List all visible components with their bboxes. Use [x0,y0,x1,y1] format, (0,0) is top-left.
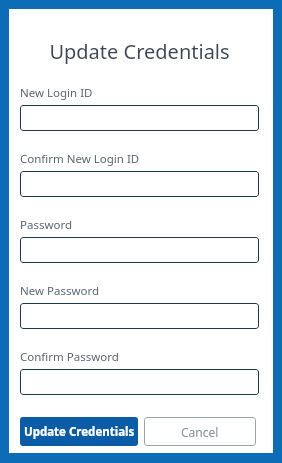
staticText: Confirm New Login ID [20,151,140,167]
button[interactable]: Update Credentials [20,417,138,446]
button[interactable]: Cancel [144,417,256,446]
button[interactable] [20,303,259,329]
staticText: Confirm Password [20,349,119,365]
staticText: Update Credentials [20,38,259,65]
button[interactable] [20,237,259,263]
staticText: Password [20,217,73,233]
staticText: New Password [20,283,100,299]
staticText: Update Credentials [24,424,135,440]
staticText: Cancel [181,424,219,440]
button[interactable] [20,171,259,197]
button[interactable] [20,105,259,131]
button[interactable] [20,369,259,395]
staticText: New Login ID [20,85,93,101]
